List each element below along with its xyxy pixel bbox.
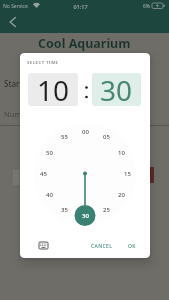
button[interactable]: 10 [28,73,78,106]
button[interactable]: 05 [20,53,40,63]
button[interactable] [9,17,17,27]
staticText: 01:17 [73,3,88,10]
staticText: 20 [118,191,125,199]
button[interactable]: 25 [20,53,40,63]
button[interactable]: 30 [92,73,141,106]
button[interactable]: CANCEL [88,239,116,253]
button[interactable]: 10 [20,53,40,63]
staticText: SELECT TIME [27,59,59,65]
button[interactable]: 00 [20,53,40,63]
staticText: No Service [3,3,28,10]
button[interactable]: OK [122,239,142,253]
button[interactable]: 50 [20,53,40,63]
button[interactable]: 35 [20,53,40,63]
button[interactable]: 40 [20,53,40,63]
staticText: 05 [103,133,110,141]
staticText: 15 [124,170,131,178]
button[interactable]: 55 [20,53,40,63]
staticText: Number [4,109,34,119]
staticText: 10 [118,149,125,157]
staticText: 6% [143,3,151,10]
staticText: 25 [103,206,110,214]
button[interactable] [39,242,48,249]
staticText: OK [128,243,136,250]
staticText: CANCEL [91,243,113,250]
button[interactable]: 30 [20,53,40,63]
button[interactable]: 20 [20,53,40,63]
staticText: 35 [61,206,68,214]
staticText: 30 [100,73,133,104]
button[interactable]: 15 [20,53,40,63]
staticText: 10 [37,73,70,104]
button[interactable]: 45 [20,53,40,63]
staticText: 45 [40,170,47,178]
staticText: 55 [61,133,68,141]
staticText: 50 [46,149,53,157]
staticText: 30 [82,212,89,220]
staticText: 00 [82,128,89,136]
staticText: 40 [46,191,53,199]
staticText: Start time [4,78,42,89]
staticText: Cool Aquarium [38,35,131,52]
